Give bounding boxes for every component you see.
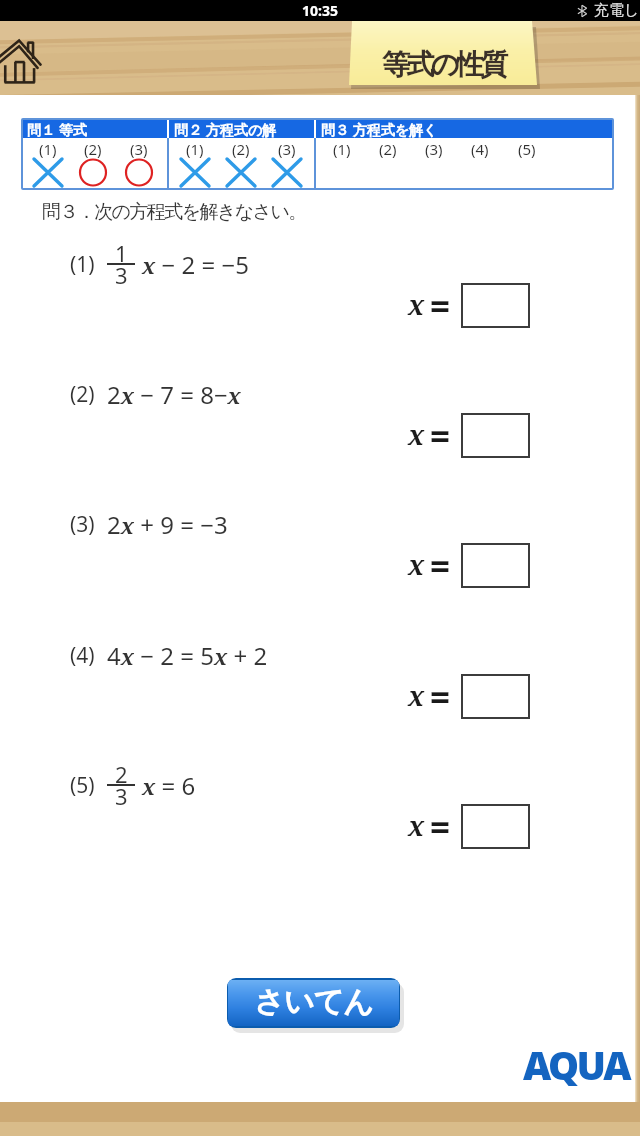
staticText: (3) <box>70 510 95 539</box>
button[interactable] <box>461 804 530 849</box>
staticText: x <box>408 416 425 453</box>
staticText: 問３．次の方程式を解きなさい。 <box>42 200 306 224</box>
staticText: = <box>430 412 451 457</box>
staticText: x <box>408 546 425 583</box>
staticText: (3) <box>425 139 443 159</box>
staticText: x <box>408 677 425 714</box>
staticText: = <box>430 803 451 848</box>
staticText: 等式の性質 <box>382 47 505 82</box>
staticText: (2) <box>232 139 250 159</box>
staticText: = <box>430 282 451 327</box>
staticText: 4x − 2 = 5x + 2 <box>107 639 268 672</box>
staticText: (3) <box>278 139 296 159</box>
staticText: 2 <box>115 759 128 789</box>
button[interactable]: さいてん <box>227 978 400 1028</box>
staticText: (1) <box>333 139 351 159</box>
staticText: 1 <box>115 238 128 268</box>
staticText: 3 <box>115 260 128 290</box>
staticText: (2) <box>379 139 397 159</box>
staticText: (5) <box>518 139 536 159</box>
staticText: (4) <box>70 641 95 670</box>
staticText: x <box>408 286 425 323</box>
staticText: さいてん <box>254 983 373 1021</box>
staticText: 問１ 等式 <box>27 120 87 139</box>
staticText: (1) <box>39 139 57 159</box>
button[interactable] <box>461 283 530 328</box>
staticText: = <box>430 542 451 587</box>
button[interactable] <box>461 413 530 458</box>
staticText: 2x − 7 = 8−x <box>107 378 241 411</box>
button[interactable] <box>461 543 530 588</box>
staticText: 10:35 <box>302 1 338 20</box>
staticText: 問２ 方程式の解 <box>174 120 276 139</box>
staticText: x − 2 = −5 <box>142 248 249 281</box>
staticText: (2) <box>70 380 95 409</box>
staticText: (1) <box>70 250 95 279</box>
staticText: (2) <box>84 139 102 159</box>
staticText: x = 6 <box>142 769 196 802</box>
staticText: 3 <box>115 781 128 811</box>
staticText: x <box>408 807 425 844</box>
staticText: 問３ 方程式を解く <box>321 120 438 139</box>
staticText: (5) <box>70 771 95 800</box>
staticText: AQUA <box>523 1038 630 1091</box>
staticText: (1) <box>186 139 204 159</box>
button[interactable]: Home <box>0 33 44 85</box>
staticText: 2x + 9 = −3 <box>107 508 228 541</box>
staticText: = <box>430 673 451 718</box>
staticText: (3) <box>130 139 148 159</box>
button[interactable] <box>461 674 530 719</box>
staticText: (4) <box>471 139 489 159</box>
staticText: 充電し <box>594 1 640 20</box>
